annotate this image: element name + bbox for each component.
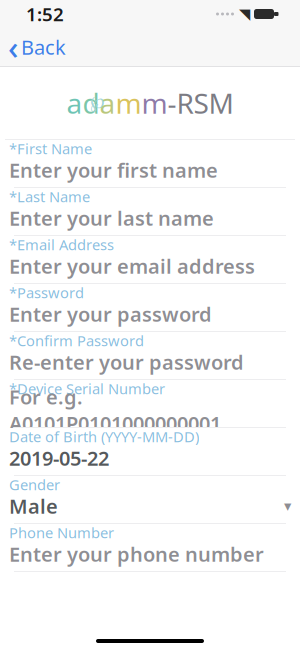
staticText: Device Serial Number bbox=[17, 379, 165, 398]
staticText: Enter your last name bbox=[9, 205, 214, 231]
staticText: a bbox=[66, 84, 82, 122]
button[interactable]: * bbox=[0, 332, 300, 380]
staticText: m bbox=[141, 84, 167, 122]
button[interactable]: * bbox=[0, 284, 300, 332]
staticText: * bbox=[9, 331, 17, 350]
staticText: a bbox=[99, 84, 115, 122]
staticText: Phone Number bbox=[9, 523, 114, 542]
staticText: Enter your first name bbox=[9, 157, 218, 183]
button[interactable]: * bbox=[0, 236, 300, 284]
button[interactable]: Gender bbox=[0, 476, 300, 524]
staticText: Last Name bbox=[17, 187, 90, 206]
button[interactable]: * bbox=[0, 380, 300, 428]
staticText: Re-enter your password bbox=[9, 349, 244, 375]
staticText: First Name bbox=[17, 139, 92, 158]
staticText: Date of Birth (YYYY-MM-DD) bbox=[9, 427, 199, 446]
button[interactable]: * bbox=[0, 140, 300, 188]
staticText: * bbox=[9, 187, 17, 206]
staticText: ‹ bbox=[8, 26, 18, 68]
button[interactable]: * bbox=[0, 188, 300, 236]
staticText: -RSM bbox=[167, 84, 233, 122]
staticText: Password bbox=[17, 283, 84, 302]
button[interactable]: ‹ bbox=[0, 28, 76, 66]
staticText: m bbox=[115, 84, 141, 122]
staticText: ▾ bbox=[284, 498, 291, 514]
staticText: * bbox=[9, 235, 17, 254]
staticText: Enter your password bbox=[9, 301, 212, 327]
staticText: d bbox=[82, 84, 99, 122]
staticText: 1:52 bbox=[26, 2, 64, 26]
staticText: ℘ bbox=[90, 90, 104, 113]
staticText: Confirm Password bbox=[17, 331, 144, 350]
staticText: Back bbox=[21, 34, 66, 60]
staticText: 2019-05-22 bbox=[9, 445, 109, 471]
staticText: Male bbox=[9, 493, 58, 519]
button[interactable]: Date of Birth (YYYY-MM-DD) bbox=[0, 428, 300, 476]
staticText: Email Address bbox=[17, 235, 114, 254]
button[interactable]: Phone Number bbox=[0, 524, 300, 572]
staticText: ◥ bbox=[239, 6, 250, 22]
staticText: Enter your email address bbox=[9, 253, 255, 279]
staticText: Gender bbox=[9, 475, 60, 494]
staticText: * bbox=[9, 379, 17, 398]
staticText: * bbox=[9, 139, 17, 158]
staticText: * bbox=[9, 283, 17, 302]
staticText: For e.g. A0101P0101000000001 bbox=[9, 383, 221, 436]
staticText: Enter your phone number bbox=[9, 541, 264, 567]
